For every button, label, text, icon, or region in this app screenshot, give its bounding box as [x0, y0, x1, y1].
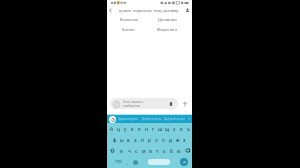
- staticText: у: [124, 126, 127, 132]
- button[interactable]: т: [154, 145, 161, 156]
- button[interactable]: ь: [161, 145, 168, 156]
- button[interactable]: ы: [118, 134, 125, 145]
- button[interactable]: и: [147, 145, 154, 156]
- staticText: х: [180, 126, 183, 132]
- button[interactable]: Текст вашего сообщения: [110, 98, 178, 109]
- staticText: з: [173, 126, 176, 132]
- button[interactable]: п: [139, 134, 146, 145]
- staticText: ю: [177, 148, 181, 154]
- staticText: Договоры: [158, 17, 177, 22]
- button[interactable]: Бизнес: [109, 27, 148, 32]
- staticText: ъ: [187, 126, 190, 132]
- button[interactable]: Account: [182, 6, 192, 15]
- staticText: ч: [128, 148, 131, 154]
- staticText: к: [131, 126, 134, 132]
- staticText: ц: [117, 126, 120, 132]
- staticText: т: [156, 148, 159, 154]
- button[interactable]: н: [143, 123, 150, 134]
- button[interactable]: р: [146, 134, 153, 145]
- staticText: л: [162, 137, 165, 143]
- staticText: ?123: [115, 160, 122, 164]
- button[interactable]: Добрый день: [140, 115, 163, 123]
- button[interactable]: Attach file: [167, 100, 174, 107]
- button[interactable]: Enter: [180, 158, 188, 166]
- staticText: м: [142, 148, 146, 154]
- staticText: д: [169, 137, 172, 143]
- button[interactable]: Space: [148, 159, 170, 165]
- button[interactable]: Здравствуйте: [116, 115, 140, 123]
- button[interactable]: ч: [125, 145, 133, 156]
- button[interactable]: б: [168, 145, 175, 156]
- staticText: ш: [158, 126, 163, 132]
- button[interactable]: Shift: [107, 145, 117, 156]
- button[interactable]: й: [107, 123, 115, 134]
- button[interactable]: Договоры: [148, 17, 187, 22]
- staticText: о: [155, 137, 158, 143]
- staticText: Добрый вечер: [164, 117, 186, 121]
- staticText: в: [127, 137, 130, 143]
- button[interactable]: ,: [123, 156, 131, 168]
- button[interactable]: ю: [175, 145, 182, 156]
- staticText: с: [135, 148, 138, 154]
- button[interactable]: ц: [115, 123, 122, 134]
- staticText: ж: [176, 137, 180, 143]
- staticText: Текст вашего сообщения: [123, 100, 143, 108]
- button[interactable]: л: [160, 134, 167, 145]
- button[interactable]: Backspace: [182, 145, 192, 156]
- button[interactable]: з: [171, 123, 178, 134]
- button[interactable]: Добрый вечер: [163, 115, 186, 123]
- button[interactable]: х: [178, 123, 185, 134]
- staticText: и: [149, 148, 152, 154]
- staticText: р: [148, 137, 151, 143]
- staticText: ь: [163, 148, 166, 154]
- button[interactable]: Маркетинг: [148, 27, 187, 32]
- button[interactable]: ф: [111, 134, 118, 145]
- staticText: я: [120, 148, 123, 154]
- button[interactable]: Back: [107, 6, 114, 15]
- button[interactable]: Вакансии: [109, 17, 148, 22]
- button[interactable]: в: [125, 134, 132, 145]
- button[interactable]: Google: [109, 116, 116, 123]
- staticText: щ: [165, 126, 170, 132]
- button[interactable]: д: [167, 134, 174, 145]
- button[interactable]: о: [153, 134, 160, 145]
- staticText: Бизнес: [122, 27, 136, 32]
- button[interactable]: More suggestions: [186, 115, 192, 123]
- button[interactable]: ъ: [185, 123, 192, 134]
- button[interactable]: ?123: [114, 156, 123, 168]
- staticText: й: [110, 126, 113, 132]
- button[interactable]: щ: [164, 123, 171, 134]
- button[interactable]: Voice input: [131, 156, 140, 168]
- staticText: п: [141, 137, 144, 143]
- button[interactable]: е: [136, 123, 143, 134]
- button[interactable]: м: [140, 145, 147, 156]
- button[interactable]: Send: [180, 99, 189, 108]
- staticText: .: [176, 160, 177, 165]
- button[interactable]: у: [122, 123, 129, 134]
- staticText: Вакансии: [120, 17, 138, 22]
- staticText: э: [183, 137, 186, 143]
- button[interactable]: г: [150, 123, 157, 134]
- staticText: проект подписать тему договор: [119, 8, 179, 13]
- staticText: ф: [113, 137, 117, 143]
- button[interactable]: а: [132, 134, 139, 145]
- button[interactable]: к: [129, 123, 136, 134]
- staticText: ,: [127, 160, 128, 165]
- staticText: Маркетинг: [157, 27, 178, 32]
- staticText: а: [134, 137, 137, 143]
- button[interactable]: я: [117, 145, 125, 156]
- staticText: б: [170, 148, 173, 154]
- staticText: е: [138, 126, 141, 132]
- button[interactable]: с: [133, 145, 140, 156]
- staticText: Добрый день: [142, 117, 162, 121]
- staticText: н: [145, 126, 148, 132]
- button[interactable]: э: [181, 134, 188, 145]
- button[interactable]: ж: [174, 134, 181, 145]
- button[interactable]: ш: [157, 123, 164, 134]
- staticText: ы: [120, 137, 124, 143]
- staticText: г: [152, 126, 155, 132]
- staticText: Здравствуйте: [118, 117, 138, 121]
